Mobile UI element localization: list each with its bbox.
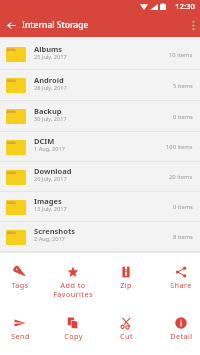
staticText: 100 items	[166, 143, 193, 151]
button[interactable]: Cut	[102, 304, 150, 355]
button[interactable]: Backup	[0, 101, 200, 132]
staticText: 20 July, 2017	[34, 175, 67, 183]
staticText: Download	[34, 166, 72, 176]
button[interactable]: Copy	[49, 304, 97, 355]
staticText: 2 Aug, 2017	[34, 235, 65, 243]
button[interactable]: Zip	[102, 253, 150, 304]
staticText: Albums	[34, 44, 63, 54]
staticText: Cut	[120, 331, 133, 341]
button[interactable]: Android	[0, 70, 200, 101]
staticText: Internal Storage	[22, 19, 89, 31]
button[interactable]: Detail	[157, 304, 200, 355]
staticText: Zip	[120, 280, 132, 290]
staticText: Tags	[11, 280, 29, 290]
button[interactable]: Share	[157, 253, 200, 304]
staticText: 25 July, 2017	[34, 53, 67, 61]
staticText: 28 July, 2017	[34, 84, 67, 92]
staticText: 5 items	[173, 82, 193, 90]
staticText: Images	[34, 196, 62, 206]
button[interactable]: Back	[0, 13, 22, 37]
button[interactable]: Albums	[0, 39, 200, 70]
staticText: 0 items	[173, 113, 193, 121]
button[interactable]: Add to Favourites	[49, 253, 97, 304]
staticText: 12:30	[175, 1, 195, 12]
button[interactable]: Download	[0, 162, 200, 192]
staticText: Share	[170, 280, 192, 290]
staticText: 10 items	[169, 51, 193, 59]
button[interactable]: Screnshots	[0, 222, 200, 252]
staticText: Copy	[64, 331, 83, 341]
staticText: 1 Aug, 2017	[34, 145, 65, 153]
button[interactable]: More options	[187, 13, 200, 37]
staticText: 15 July, 2017	[34, 205, 67, 213]
staticText: 8 items	[173, 233, 193, 241]
button[interactable]: Images	[0, 192, 200, 222]
staticText: 0 items	[173, 203, 193, 211]
staticText: Send	[11, 331, 30, 341]
button[interactable]: DCIM	[0, 132, 200, 162]
staticText: DCIM	[34, 136, 55, 146]
staticText: 20 items	[169, 173, 193, 181]
staticText: Add to Favourites	[53, 280, 93, 300]
staticText: Android	[34, 75, 64, 85]
staticText: Detail	[170, 331, 193, 341]
staticText: 30 July, 2017	[34, 115, 67, 123]
button[interactable]: Tags	[0, 253, 44, 304]
staticText: Screnshots	[34, 226, 75, 236]
staticText: Backup	[34, 106, 62, 116]
button[interactable]: Send	[0, 304, 44, 355]
